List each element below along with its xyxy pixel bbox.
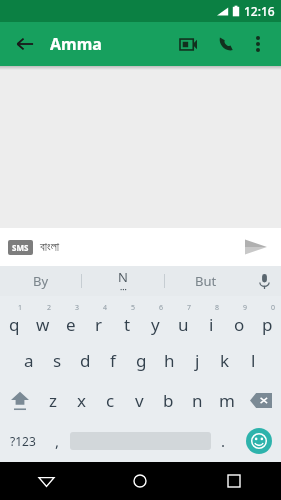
staticText: c	[106, 389, 115, 412]
staticText: u	[178, 313, 189, 336]
button[interactable]: 5	[113, 298, 141, 340]
button[interactable]: s	[43, 340, 71, 380]
button[interactable]: 2	[29, 298, 57, 340]
staticText: .	[221, 431, 226, 451]
staticText: •••	[120, 286, 127, 294]
staticText: ?123	[10, 433, 36, 449]
button[interactable]: 7	[169, 298, 197, 340]
staticText: l	[251, 349, 256, 372]
staticText: f	[110, 349, 116, 372]
button[interactable]: f	[99, 340, 127, 380]
button[interactable]: Backspace	[241, 380, 281, 420]
staticText: e	[66, 313, 76, 336]
button[interactable]: Home	[93, 462, 187, 500]
staticText: 1	[18, 303, 23, 313]
button[interactable]: k	[211, 340, 239, 380]
button[interactable]: m	[212, 380, 241, 420]
button[interactable]: h	[155, 340, 183, 380]
button[interactable]: Send	[239, 230, 273, 264]
button[interactable]: But	[165, 266, 247, 296]
button[interactable]: SMS	[0, 228, 281, 266]
button[interactable]: By	[0, 266, 81, 296]
button[interactable]: ?123	[0, 420, 45, 462]
staticText: b	[163, 389, 174, 412]
button[interactable]: n	[183, 380, 212, 420]
button[interactable]: l	[239, 340, 267, 380]
button[interactable]: Voice input	[247, 266, 281, 296]
staticText: m	[219, 389, 235, 412]
staticText: 9	[243, 303, 248, 313]
staticText: r	[95, 313, 103, 336]
staticText: d	[80, 349, 91, 372]
staticText: 7	[187, 303, 192, 313]
staticText: n	[192, 389, 203, 412]
staticText: z	[49, 389, 57, 412]
staticText: 8	[215, 303, 220, 313]
button[interactable]: a	[14, 340, 43, 380]
button[interactable]: Video call	[173, 29, 203, 59]
staticText: N	[118, 268, 128, 286]
button[interactable]: g	[127, 340, 155, 380]
button[interactable]: 1	[0, 298, 29, 340]
button[interactable]: Back	[10, 29, 40, 59]
staticText: y	[151, 313, 160, 336]
button[interactable]: j	[183, 340, 211, 380]
button[interactable]: 0	[253, 298, 281, 340]
button[interactable]: v	[125, 380, 154, 420]
button[interactable]: z	[39, 380, 67, 420]
staticText: g	[136, 349, 147, 372]
button[interactable]: 4	[85, 298, 113, 340]
button[interactable]: ,	[45, 420, 70, 462]
button[interactable]: More options	[245, 31, 271, 57]
staticText: 4	[103, 303, 108, 313]
staticText: By	[33, 272, 49, 290]
button[interactable]: Shift	[0, 380, 39, 420]
staticText: 5	[131, 303, 136, 313]
staticText: k	[220, 349, 230, 372]
staticText: x	[77, 389, 86, 412]
staticText: w	[36, 313, 50, 336]
staticText: i	[209, 313, 214, 336]
staticText: s	[53, 349, 62, 372]
staticText: t	[124, 313, 131, 336]
staticText: 6	[159, 303, 164, 313]
button[interactable]: Space	[70, 420, 211, 462]
button[interactable]: b	[154, 380, 183, 420]
staticText: 0	[271, 303, 276, 313]
button[interactable]: Call	[211, 29, 241, 59]
staticText: বাংলা	[40, 241, 60, 253]
button[interactable]: Recents	[187, 462, 281, 500]
button[interactable]: Emoji	[236, 420, 281, 462]
staticText: SMS	[12, 242, 29, 253]
button[interactable]: 8	[197, 298, 225, 340]
staticText: v	[135, 389, 144, 412]
staticText: q	[9, 313, 20, 336]
staticText: o	[234, 313, 245, 336]
button[interactable]: N	[82, 266, 164, 296]
staticText: p	[262, 313, 273, 336]
staticText: 2	[47, 303, 52, 313]
staticText: a	[24, 349, 34, 372]
button[interactable]: 9	[225, 298, 253, 340]
button[interactable]: 6	[141, 298, 169, 340]
button[interactable]: c	[96, 380, 125, 420]
staticText: But	[195, 272, 217, 290]
staticText: h	[164, 349, 175, 372]
staticText: 3	[75, 303, 80, 313]
staticText: Amma	[50, 33, 102, 55]
button[interactable]: x	[67, 380, 96, 420]
staticText: ,	[55, 431, 60, 451]
button[interactable]: .	[211, 420, 236, 462]
button[interactable]: Back	[0, 462, 93, 500]
staticText: j	[195, 349, 200, 372]
button[interactable]: d	[71, 340, 99, 380]
staticText: 12:16	[244, 3, 275, 19]
button[interactable]: 3	[57, 298, 85, 340]
